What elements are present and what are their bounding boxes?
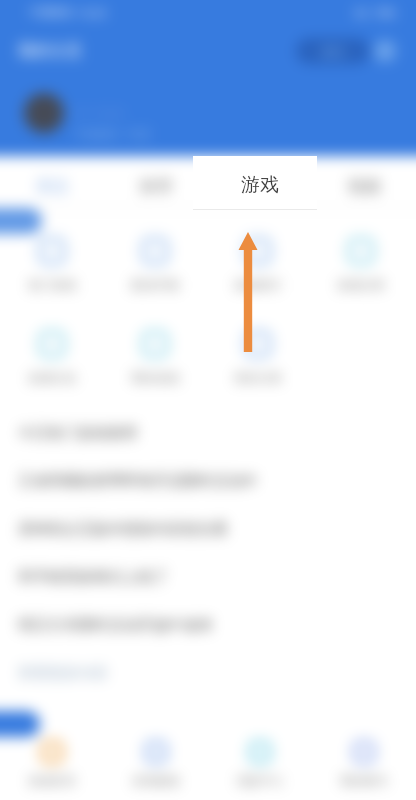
staticText: 推荐: [139, 176, 173, 197]
button[interactable]: 游戏: [208, 156, 312, 210]
staticText: 王者荣耀新赛季即将开启限时活动中: [18, 472, 258, 491]
button[interactable]: 新游开测: [103, 237, 206, 292]
button[interactable]: 游戏首页: [0, 740, 104, 788]
button[interactable]: 我的账号: [312, 740, 416, 788]
staticText: 新游开测: [131, 277, 179, 292]
other: Pointer arrow to Games tab: [0, 0, 416, 800]
button[interactable]: Tip: [0, 711, 40, 737]
button[interactable]: 游戏首页: [0, 740, 104, 788]
staticText: 10:24: [78, 5, 107, 20]
staticText: 关注: [35, 176, 69, 197]
staticText: 热门游戏: [28, 277, 76, 292]
staticText: 我的游戏: [131, 370, 179, 385]
button[interactable]: More: [374, 40, 396, 62]
staticText: 中国移动: [29, 5, 73, 19]
staticText: 游戏首页: [28, 773, 76, 788]
staticText: 更多分类: [234, 370, 282, 385]
staticText: 游戏分类: [337, 277, 385, 292]
staticText: 更多分类: [234, 370, 282, 385]
button[interactable]: 关注: [0, 156, 104, 210]
staticText: 游戏首页: [28, 773, 76, 788]
staticText: 游戏分类: [337, 277, 385, 292]
staticText: 10:24: [78, 5, 107, 20]
staticText: 视频: [347, 176, 381, 197]
staticText: 游戏: [243, 176, 277, 197]
staticText: 消息中心: [236, 773, 284, 788]
staticText: 明日方舟限时活动开放中速来: [18, 616, 213, 635]
staticText: 关注: [35, 176, 69, 197]
staticText: 4G 78%: [354, 5, 396, 20]
button[interactable]: 我的游戏: [103, 330, 206, 385]
staticText: 今日热门游戏推荐: [18, 424, 138, 443]
staticText: 推荐: [139, 176, 173, 197]
staticText: 和平精英新模式上线了: [18, 568, 168, 587]
button[interactable]: 消息中心: [208, 740, 312, 788]
staticText: 明日方舟限时活动开放中速来: [18, 616, 213, 635]
staticText: 我的主页: [18, 41, 82, 61]
button[interactable]: Badge: [0, 208, 42, 234]
button[interactable]: 游戏排行: [206, 237, 309, 292]
staticText: 原神四点五版本更新内容抢先看: [18, 520, 228, 539]
button[interactable]: 游戏: [208, 156, 312, 210]
button[interactable]: Badge: [0, 208, 42, 234]
button[interactable]: Profile avatar: [24, 93, 64, 133]
staticText: 中国移动: [29, 5, 73, 19]
staticText: 我的游戏: [131, 370, 179, 385]
button[interactable]: 关注: [0, 156, 104, 210]
staticText: 4G 78%: [354, 5, 396, 20]
staticText: 我的账号: [340, 773, 388, 788]
button[interactable]: 热门游戏: [0, 237, 103, 292]
staticText: 查看更多内容: [18, 664, 108, 683]
staticText: 热门游戏: [28, 277, 76, 292]
button[interactable]: 新游开测: [103, 237, 206, 292]
button[interactable]: 更多分类: [206, 330, 309, 385]
button[interactable]: 游戏礼包: [0, 330, 103, 385]
staticText: 原神四点五版本更新内容抢先看: [18, 520, 228, 539]
button[interactable]: More: [374, 40, 396, 62]
staticText: 游戏: [241, 173, 279, 197]
staticText: 发现精选: [132, 773, 180, 788]
button[interactable]: 推荐: [104, 156, 208, 210]
button[interactable]: 我的账号: [312, 740, 416, 788]
button[interactable]: 游戏排行: [206, 237, 309, 292]
staticText: 王者荣耀新赛季即将开启限时活动中: [18, 472, 258, 491]
staticText: 查看更多内容: [18, 664, 108, 683]
button[interactable]: 签到: [296, 38, 370, 64]
button[interactable]: 视频: [312, 156, 416, 210]
button[interactable]: 发现精选: [104, 740, 208, 788]
button[interactable]: 我的游戏: [103, 330, 206, 385]
button[interactable]: [193, 156, 317, 210]
staticText: 游戏礼包: [28, 370, 76, 385]
button[interactable]: 签到: [296, 38, 370, 64]
button[interactable]: Tip: [0, 711, 40, 737]
button[interactable]: 推荐: [104, 156, 208, 210]
button[interactable]: 热门游戏: [0, 237, 103, 292]
button[interactable]: 游戏分类: [309, 237, 412, 292]
button[interactable]: 游戏礼包: [0, 330, 103, 385]
staticText: 我的主页: [18, 41, 82, 61]
button[interactable]: 发现精选: [104, 740, 208, 788]
staticText: 我的账号: [340, 773, 388, 788]
staticText: 今日热门游戏推荐: [18, 424, 138, 443]
button[interactable]: 游戏分类: [309, 237, 412, 292]
button[interactable]: 消息中心: [208, 740, 312, 788]
staticText: 游戏礼包: [28, 370, 76, 385]
staticText: 发现精选: [132, 773, 180, 788]
staticText: 视频: [347, 176, 381, 197]
staticText: 消息中心: [236, 773, 284, 788]
staticText: 游戏排行: [234, 277, 282, 292]
staticText: 和平精英新模式上线了: [18, 568, 168, 587]
button[interactable]: Profile avatar: [24, 93, 64, 133]
staticText: 游戏排行: [234, 277, 282, 292]
staticText: 新游开测: [131, 277, 179, 292]
button[interactable]: 更多分类: [206, 330, 309, 385]
button[interactable]: 视频: [312, 156, 416, 210]
